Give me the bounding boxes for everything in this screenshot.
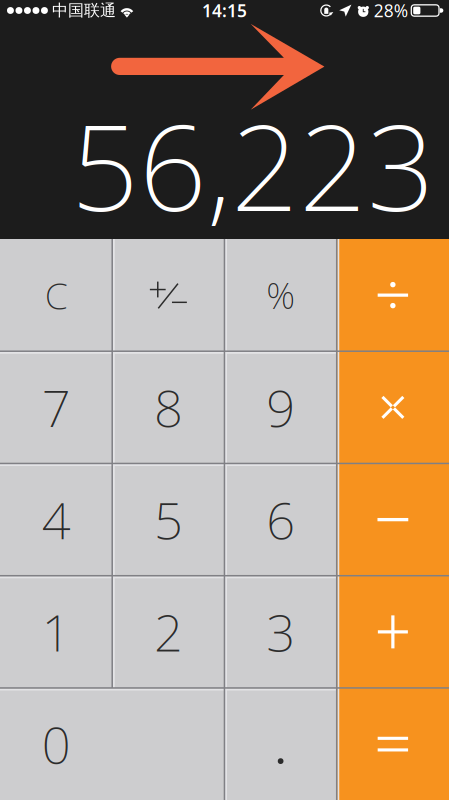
button[interactable]: 2 [112,576,224,688]
button[interactable]: % [224,239,337,351]
staticText: 56,223 [71,86,435,244]
button[interactable]: Divide [337,239,449,351]
button[interactable]: 0 [0,688,224,800]
staticText: 7 [42,374,71,441]
staticText: 14:15 [202,0,247,22]
staticText: 1 [42,598,71,665]
staticText: 4 [42,486,71,553]
button[interactable]: Multiply [337,351,449,463]
staticText: C [45,270,68,320]
staticText: 中国联通 [52,1,116,20]
button[interactable]: Decimal point [224,688,337,800]
button[interactable]: Minus [337,463,449,576]
staticText: 28% [374,0,408,22]
button[interactable]: Equals [337,688,449,800]
button[interactable]: 4 [0,463,112,576]
button[interactable]: 7 [0,351,112,463]
button[interactable]: 5 [112,463,224,576]
button[interactable]: 9 [224,351,337,463]
button[interactable]: 8 [112,351,224,463]
button[interactable]: Plus minus [112,239,224,351]
staticText: 5 [154,486,183,553]
button[interactable]: C [0,239,112,351]
staticText: 3 [266,598,295,665]
staticText: 9 [266,374,295,441]
button[interactable]: 6 [224,463,337,576]
staticText: 0 [42,710,71,778]
button[interactable]: 3 [224,576,337,688]
staticText: 6 [266,486,295,553]
button[interactable]: Plus [337,576,449,688]
staticText: 8 [154,374,183,441]
staticText: % [266,271,295,319]
button[interactable]: 1 [0,576,112,688]
staticText: 2 [154,598,183,665]
